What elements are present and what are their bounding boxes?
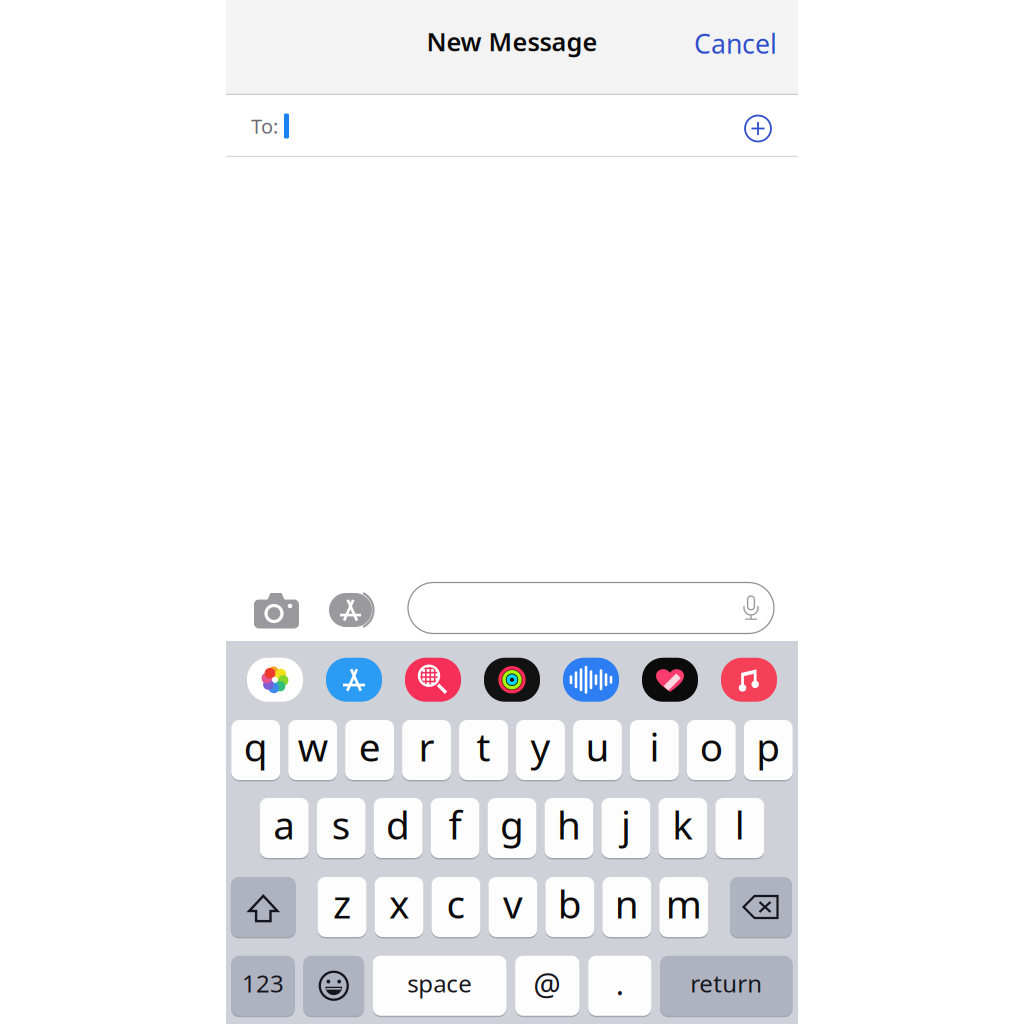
button[interactable]: w	[288, 720, 337, 780]
button[interactable]: v	[488, 877, 537, 937]
button[interactable]: e	[345, 720, 394, 780]
staticText: w	[298, 721, 328, 772]
button[interactable]: o	[687, 720, 736, 780]
staticText: x	[389, 878, 409, 929]
button[interactable]: Shift	[231, 877, 296, 937]
button[interactable]: App Store	[326, 658, 382, 702]
staticText: q	[244, 721, 268, 772]
staticText: n	[615, 878, 639, 929]
staticText: u	[585, 721, 609, 772]
button[interactable]: Photos	[247, 658, 303, 702]
staticText: a	[273, 799, 295, 850]
staticText: @	[533, 963, 561, 1004]
button[interactable]: x	[375, 877, 423, 937]
staticText: 123	[242, 967, 284, 999]
button[interactable]: k	[658, 798, 707, 858]
staticText: Cancel	[694, 26, 777, 61]
staticText: c	[446, 878, 465, 929]
button[interactable]: space	[373, 956, 506, 1016]
button[interactable]: u	[573, 720, 622, 780]
staticText: e	[359, 721, 381, 772]
staticText: d	[386, 799, 410, 850]
button[interactable]: Add contact	[745, 113, 771, 139]
staticText: j	[621, 799, 631, 850]
staticText: t	[476, 721, 490, 772]
button[interactable]: z	[318, 877, 366, 937]
staticText: r	[419, 721, 435, 772]
button[interactable]: Music	[721, 658, 777, 702]
staticText: p	[756, 721, 780, 772]
button[interactable]: Audio	[563, 658, 619, 702]
button[interactable]: iMessage apps	[327, 591, 374, 625]
button[interactable]: y	[516, 720, 565, 780]
staticText: .	[616, 963, 624, 1004]
staticText: s	[332, 799, 351, 850]
staticText: h	[557, 799, 581, 850]
button[interactable]: .	[588, 956, 651, 1016]
button[interactable]: f	[431, 798, 479, 858]
button[interactable]: n	[602, 877, 651, 937]
staticText: To:	[251, 113, 278, 139]
staticText: New Message	[426, 25, 597, 58]
staticText: y	[530, 721, 550, 772]
staticText: b	[558, 878, 582, 929]
button[interactable]: g	[488, 798, 536, 858]
button[interactable]: h	[544, 798, 593, 858]
button[interactable]: 123	[231, 956, 295, 1016]
button[interactable]: Emoji	[303, 956, 364, 1016]
button[interactable]: Camera	[254, 590, 299, 626]
staticText: v	[503, 878, 523, 929]
staticText: g	[500, 799, 524, 850]
staticText: l	[735, 799, 745, 850]
button[interactable]: Cancel	[683, 19, 788, 76]
button[interactable]: b	[545, 877, 594, 937]
staticText: z	[333, 878, 351, 929]
button[interactable]: t	[459, 720, 508, 780]
staticText: o	[700, 721, 723, 772]
button[interactable]: q	[231, 720, 280, 780]
button[interactable]: a	[260, 798, 309, 858]
staticText: space	[407, 967, 472, 999]
button[interactable]: l	[715, 798, 764, 858]
staticText: k	[672, 799, 693, 850]
button[interactable]: r	[402, 720, 451, 780]
button[interactable]: i	[630, 720, 679, 780]
button[interactable]: p	[744, 720, 793, 780]
button[interactable]: Images	[405, 658, 461, 702]
button[interactable]: j	[601, 798, 650, 858]
button[interactable]: Delete	[730, 877, 792, 937]
button[interactable]: c	[431, 877, 480, 937]
staticText: m	[666, 878, 702, 929]
staticText: return	[690, 967, 762, 999]
button[interactable]: @	[515, 956, 580, 1016]
button[interactable]: Health	[642, 658, 698, 702]
button[interactable]: s	[317, 798, 366, 858]
button[interactable]: return	[660, 956, 792, 1016]
staticText: f	[449, 799, 462, 850]
button[interactable]: d	[374, 798, 423, 858]
staticText: i	[649, 721, 659, 772]
button[interactable]: Fitness	[484, 658, 540, 702]
button[interactable]: m	[659, 877, 708, 937]
